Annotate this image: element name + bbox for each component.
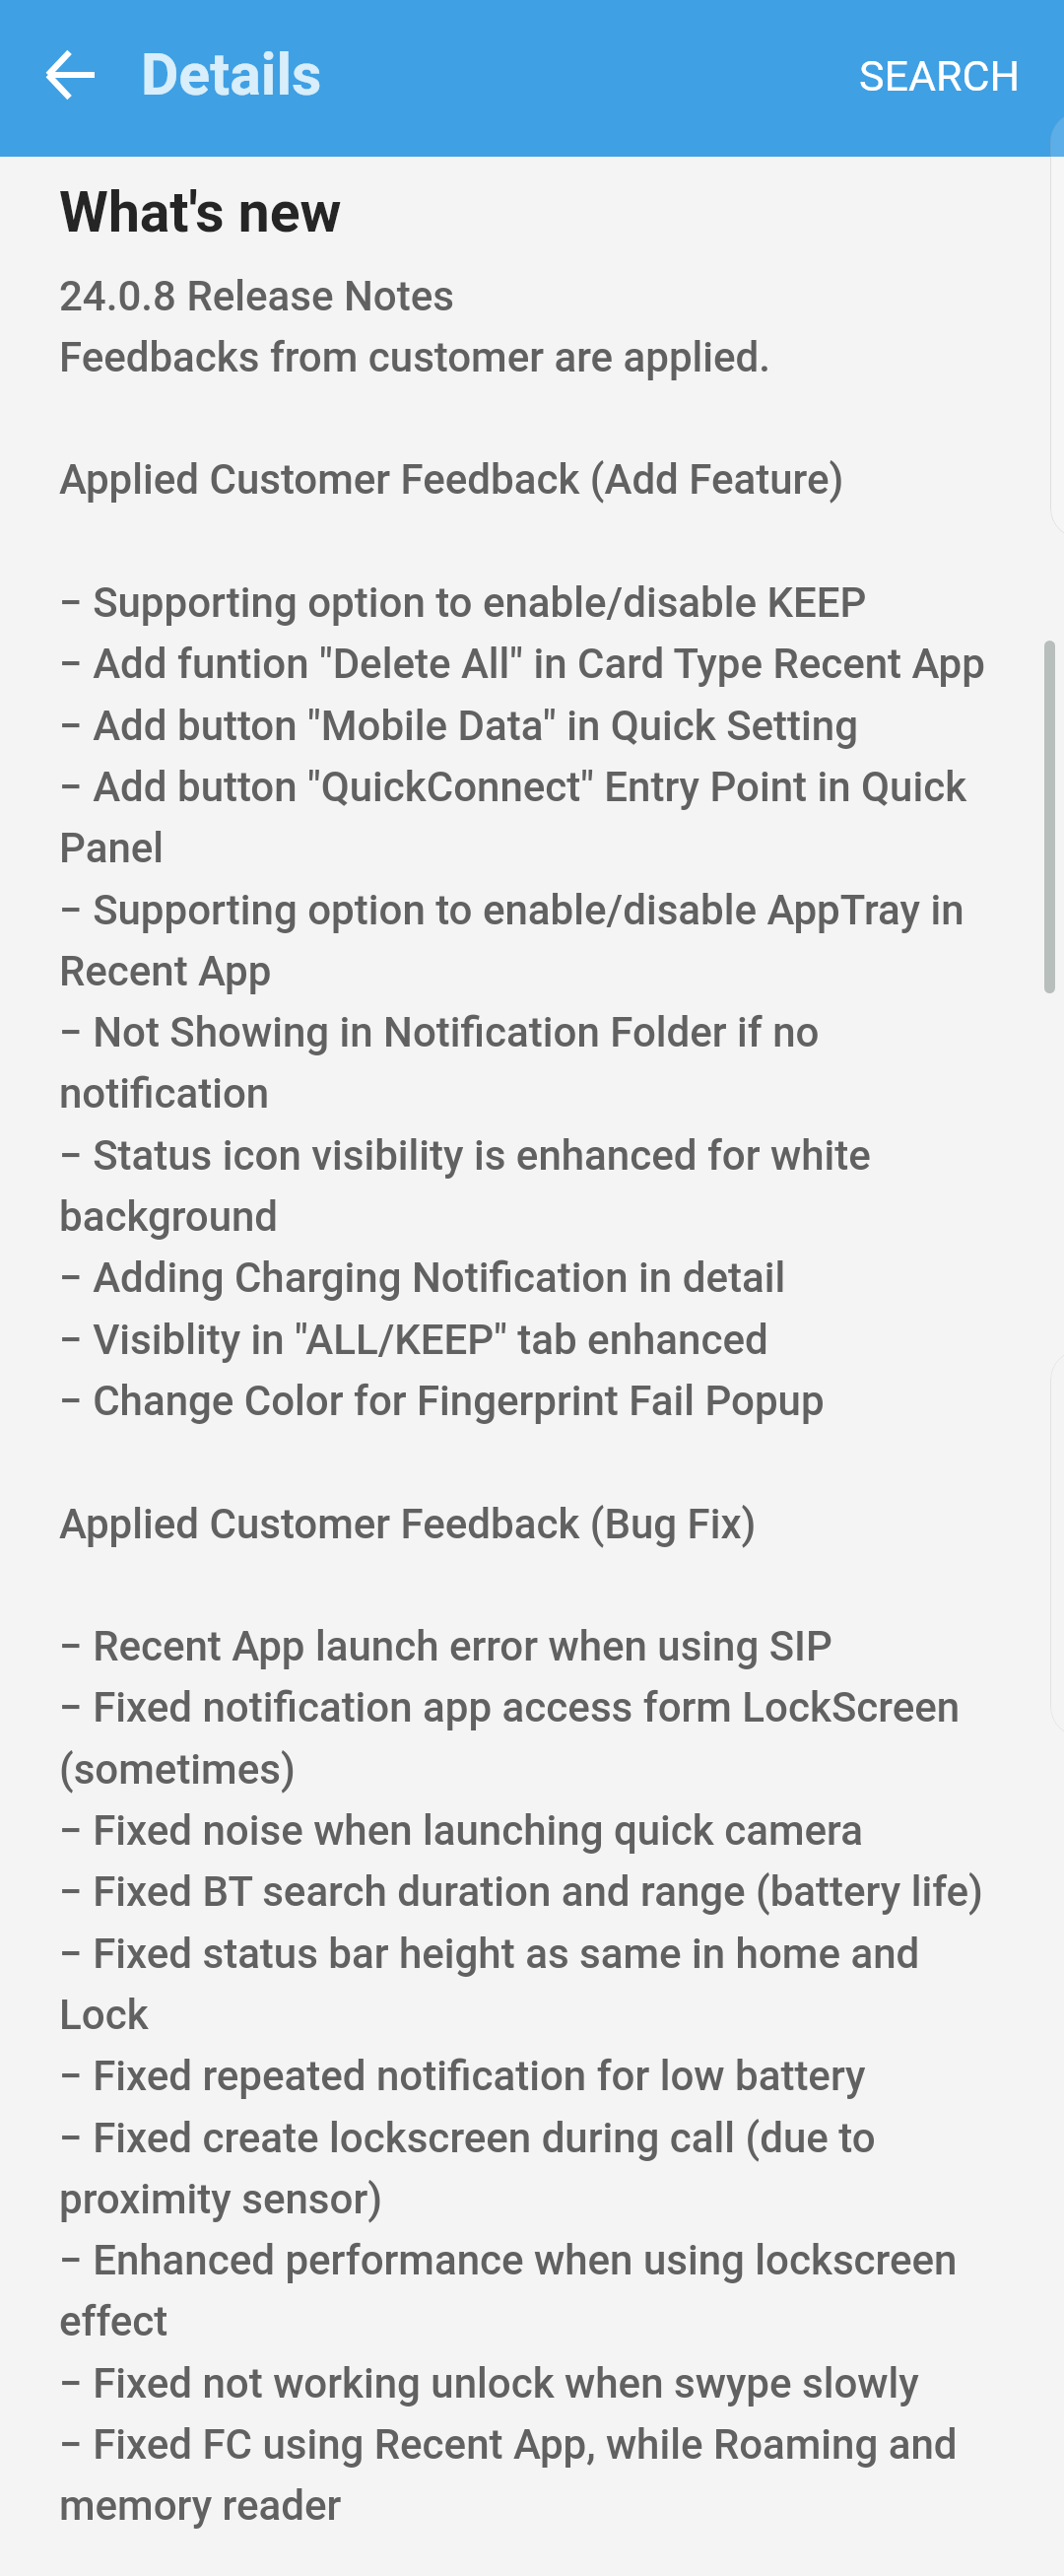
staticText: − Fixed noise when launching quick camer… [59, 1796, 863, 1858]
staticText: Panel [59, 814, 165, 875]
staticText: − Add button "Mobile Data" in Quick Sett… [59, 692, 858, 753]
staticText: − Supporting option to enable/disable KE… [59, 569, 867, 630]
staticText: Applied Customer Feedback (Add Feature) [59, 445, 844, 507]
staticText: − Fixed not working unlock when swype sl… [59, 2349, 919, 2410]
staticText: proximity sensor) [59, 2165, 383, 2226]
staticText: − Change Color for Fingerprint Fail Popu… [59, 1367, 825, 1428]
staticText: Details [141, 40, 322, 108]
staticText: Applied Customer Feedback (Bug Fix) [59, 1490, 757, 1551]
staticText: − Recent App launch error when using SIP [59, 1612, 832, 1673]
staticText: notification [59, 1059, 270, 1120]
staticText: − Fixed FC using Recent App, while Roami… [59, 2410, 958, 2472]
staticText: memory reader [59, 2472, 342, 2533]
staticText: − Fixed create lockscreen during call (d… [59, 2104, 876, 2165]
staticText: SEARCH [859, 51, 1021, 101]
staticText: Lock [59, 1981, 149, 2042]
staticText: effect [59, 2287, 168, 2348]
staticText: Feedbacks from customer are applied. [59, 323, 771, 384]
staticText: 24.0.8 Release Notes [59, 262, 454, 323]
staticText: − Fixed notification app access form Loc… [59, 1673, 961, 1734]
staticText: − Status icon visibility is enhanced for… [59, 1121, 871, 1183]
staticText: (sometimes) [59, 1735, 296, 1796]
staticText: − Visiblity in "ALL/KEEP" tab enhanced [59, 1306, 768, 1367]
staticText: − Adding Charging Notification in detail [59, 1244, 786, 1305]
button[interactable]: Navigate up [24, 28, 118, 122]
staticText: Recent App [59, 937, 272, 998]
staticText: − Enhanced performance when using locksc… [59, 2226, 958, 2287]
staticText: − Fixed repeated notification for low ba… [59, 2042, 866, 2103]
staticText: − Supporting option to enable/disable Ap… [59, 876, 964, 937]
staticText: − Not Showing in Notification Folder if … [59, 998, 820, 1059]
staticText: − Add funtion "Delete All" in Card Type … [59, 630, 985, 691]
staticText: − Add button "QuickConnect" Entry Point … [59, 753, 967, 814]
staticText: − Fixed BT search duration and range (ba… [59, 1858, 983, 1919]
button[interactable]: SEARCH [833, 28, 1046, 124]
staticText: − Fixed status bar height as same in hom… [59, 1920, 920, 1981]
staticText: background [59, 1183, 279, 1244]
staticText: What's new [59, 179, 342, 245]
